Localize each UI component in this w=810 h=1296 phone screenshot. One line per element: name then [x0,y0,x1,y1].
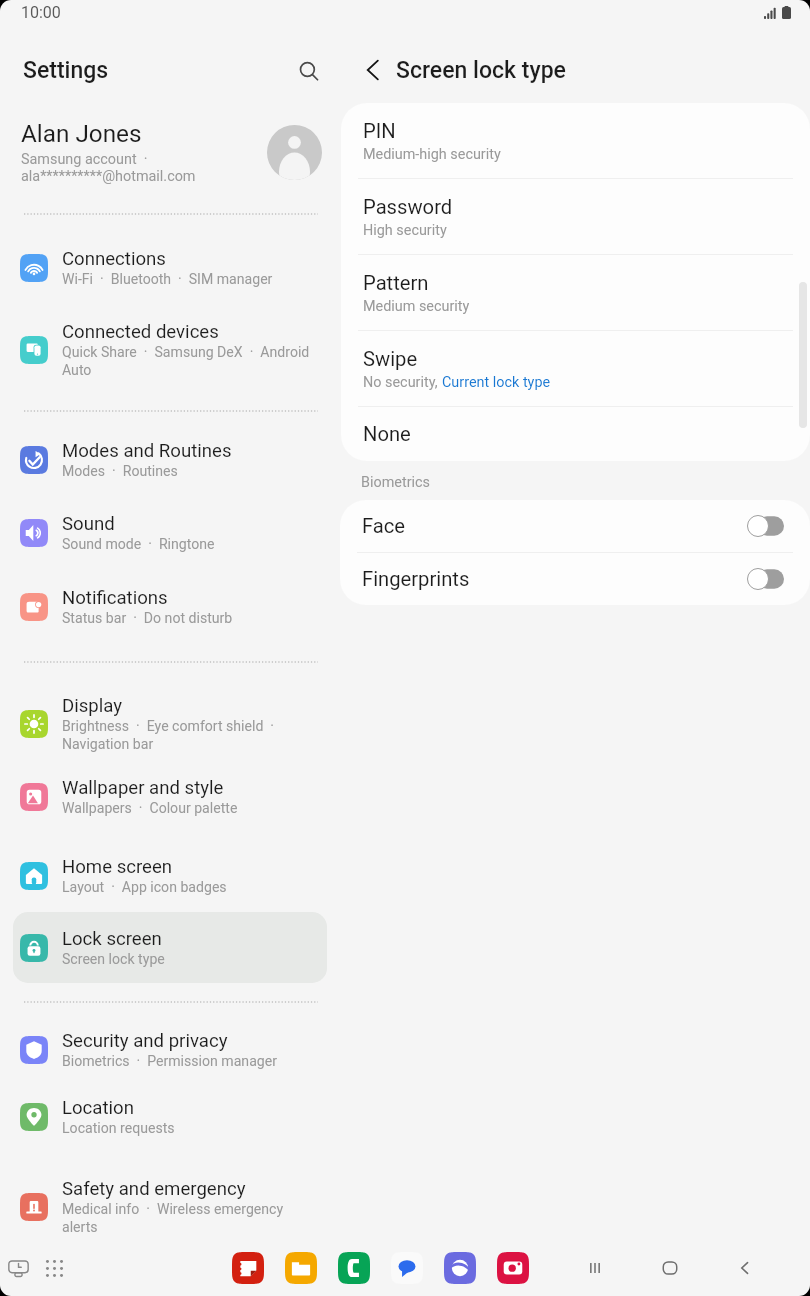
staticText: Medium security [363,298,470,315]
button[interactable]: Back [728,1251,762,1285]
staticText: Status bar · Do not disturb [62,610,233,627]
button[interactable]: Camera [497,1252,529,1284]
button[interactable]: Alan Jones [0,106,340,198]
button[interactable]: Safety and emergency [13,1163,327,1251]
button[interactable]: Lock screen [13,912,327,983]
button[interactable]: Phone [338,1252,370,1284]
staticText: No security, [363,374,442,391]
button[interactable]: Swipe [341,331,810,406]
staticText: Lock screen [62,928,162,950]
staticText: Security and privacy [62,1030,228,1052]
button[interactable]: All apps [37,1251,71,1285]
staticText: Quick Share · Samsung DeX · Android Auto [62,344,317,379]
button[interactable]: Face [340,500,810,552]
button[interactable]: Wallpaper and style [13,761,327,833]
button[interactable]: Connected devices [13,306,327,394]
button[interactable]: Search [292,54,326,88]
staticText: Samsung account · [21,151,148,168]
staticText: Home screen [62,856,173,878]
button[interactable]: Password [341,179,810,254]
staticText: Current lock type [442,374,551,391]
button[interactable]: None [341,407,810,461]
button[interactable]: Back [356,53,390,87]
staticText: Screen lock type [396,57,566,84]
staticText: Modes and Routines [62,440,232,462]
staticText: Display [62,695,123,717]
button[interactable]: My Files [285,1252,317,1284]
button[interactable]: Modes and Routines [13,424,327,496]
staticText: Biometrics · Permission manager [62,1053,277,1070]
staticText: Swipe [363,347,418,371]
staticText: Safety and emergency [62,1178,246,1200]
staticText: Modes · Routines [62,463,178,480]
staticText: Sound [62,513,115,535]
button[interactable]: Home [653,1251,687,1285]
button[interactable]: Recents [1,1251,35,1285]
staticText: Biometrics [361,474,430,491]
staticText: Pattern [363,271,429,295]
button[interactable]: Security and privacy [13,1014,327,1086]
staticText: Connections [62,248,166,270]
button[interactable]: Notes [232,1252,264,1284]
button[interactable]: Location [13,1081,327,1153]
button[interactable]: Messages [391,1252,423,1284]
staticText: Layout · App icon badges [62,879,227,896]
staticText: Alan Jones [21,119,142,147]
button[interactable]: Internet [444,1252,476,1284]
staticText: Notifications [62,587,168,609]
staticText: ala**********@hotmail.com [21,168,196,185]
button[interactable]: Connections [13,232,327,304]
staticText: 10:00 [21,3,61,22]
staticText: Settings [23,57,109,84]
button[interactable]: Sound [13,497,327,569]
staticText: Screen lock type [62,951,165,968]
button[interactable]: Fingerprints [340,553,810,605]
button[interactable]: Display [13,680,327,768]
staticText: Wallpapers · Colour palette [62,800,238,817]
staticText: Wi-Fi · Bluetooth · SIM manager [62,271,273,288]
staticText: Password [363,195,453,219]
staticText: Location requests [62,1120,175,1137]
staticText: Wallpaper and style [62,777,224,799]
staticText: Brightness · Eye comfort shield · Naviga… [62,718,317,753]
staticText: Medium-high security [363,146,501,163]
button[interactable]: Home screen [13,840,327,912]
staticText: None [363,422,411,446]
button[interactable]: Recent apps [578,1251,612,1285]
staticText: Face [362,514,747,538]
staticText: Sound mode · Ringtone [62,536,215,553]
staticText: Medical info · Wireless emergency alerts [62,1201,317,1236]
button[interactable]: Pattern [341,255,810,330]
staticText: Connected devices [62,321,219,343]
staticText: PIN [363,119,396,143]
button[interactable]: Notifications [13,571,327,643]
staticText: Fingerprints [362,567,747,591]
staticText: High security [363,222,447,239]
button[interactable]: PIN [341,103,810,178]
staticText: Location [62,1097,134,1119]
